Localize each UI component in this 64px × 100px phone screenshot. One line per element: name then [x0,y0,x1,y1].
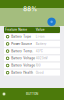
staticText: 43°C [36,49,43,53]
staticText: 4023mV [36,56,48,60]
staticText: 100 [36,64,41,67]
staticText: Battery Voltage [11,56,35,60]
staticText: 88% [23,6,37,13]
staticText: Battery Type [11,35,31,38]
button[interactable]: Add [47,18,56,26]
staticText: Value [36,28,45,31]
staticText: Battery Health [11,71,33,74]
button[interactable]: Battery Voltage [4,63,60,68]
staticText: BUTTON [26,92,38,96]
staticText: Battery Voltage [11,64,35,67]
button[interactable]: Menu [0,88,8,100]
staticText: Feature Name [5,28,27,31]
staticText: Li-ion [36,35,45,38]
staticText: Good [36,71,44,74]
staticText: Battery Temp. [11,49,33,53]
button[interactable]: Battery Voltage [4,55,60,61]
button[interactable]: Power Source [4,41,60,47]
button[interactable]: BUTTON [26,88,38,100]
staticText: Power Source [11,42,32,46]
button[interactable]: Feature Name [4,27,60,33]
staticText: Battery [36,42,47,46]
button[interactable]: Battery Temp. [4,48,60,54]
button[interactable]: Battery Health [4,70,60,76]
button[interactable]: Battery Type [4,34,60,40]
